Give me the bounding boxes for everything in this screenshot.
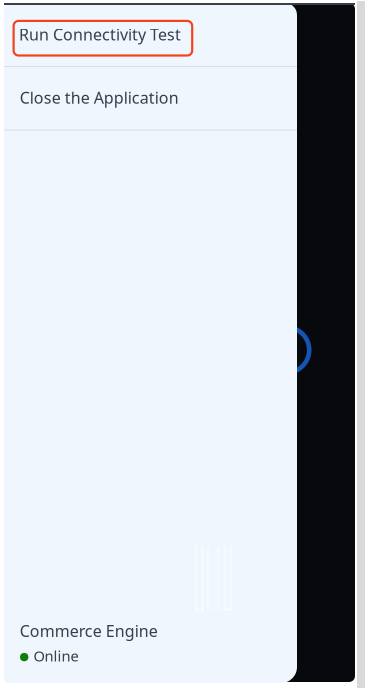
staticText: Run Connectivity Test [19, 24, 181, 45]
button[interactable]: Run Connectivity Test [4, 6, 297, 69]
staticText: Close the Application [20, 87, 179, 108]
staticText: Online [34, 646, 79, 666]
button[interactable]: Close the Application [4, 67, 297, 130]
staticText: Commerce Engine [20, 620, 158, 641]
